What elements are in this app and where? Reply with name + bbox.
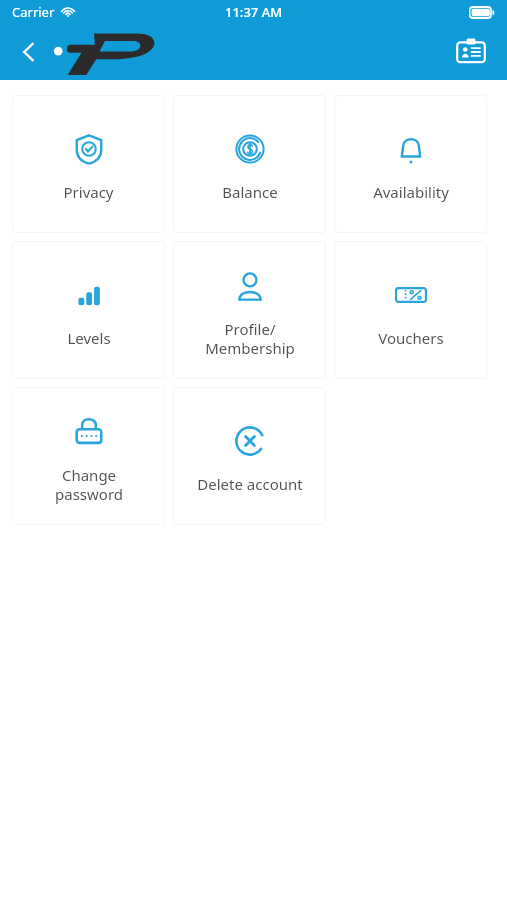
button[interactable]: Balance [173,95,326,233]
button[interactable]: Privacy [12,95,165,233]
staticText: Vouchers [378,328,444,348]
button[interactable]: Membership card [449,30,493,74]
button[interactable]: Levels [12,241,165,379]
button[interactable]: Delete account [173,387,326,525]
button[interactable]: Availability [334,95,487,233]
staticText: Profile/ Membership [205,319,295,358]
staticText: Availability [373,182,449,202]
staticText: Privacy [63,182,114,202]
staticText: Delete account [197,474,303,494]
button[interactable]: Vouchers [334,241,487,379]
button[interactable]: Change password [12,387,165,525]
staticText: Carrier [12,3,55,21]
button[interactable]: Profile/ Membership [173,241,326,379]
staticText: Levels [67,328,111,348]
button[interactable]: Back [8,31,50,73]
staticText: Balance [222,182,278,202]
staticText: Change password [55,465,123,504]
staticText: 11:37 AM [225,3,283,21]
